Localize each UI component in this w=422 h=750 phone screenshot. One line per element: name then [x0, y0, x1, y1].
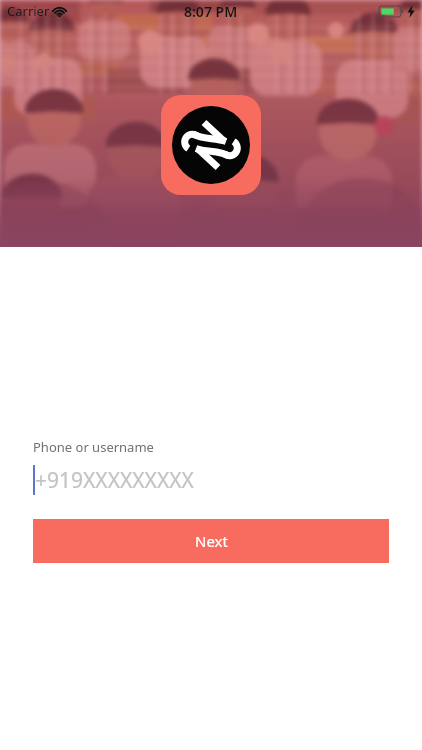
staticText: +919XXXXXXXXX	[35, 466, 194, 495]
staticText: Next	[195, 531, 228, 551]
staticText: Carrier	[7, 2, 50, 20]
staticText: Phone or username	[33, 438, 154, 456]
button[interactable]: Next	[33, 519, 389, 563]
staticText: 8:07 PM	[184, 2, 238, 21]
other: Wi-Fi	[52, 4, 67, 19]
